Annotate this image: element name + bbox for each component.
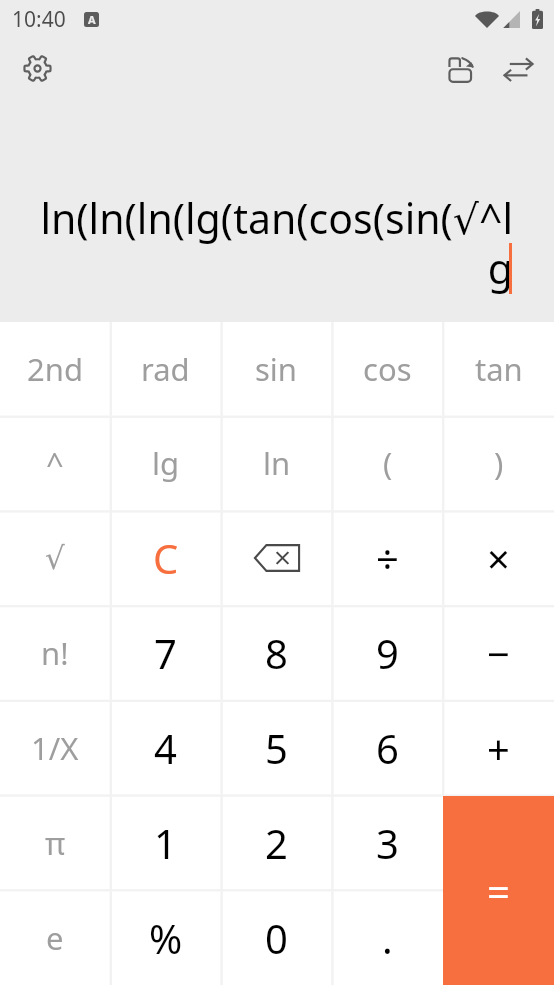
staticText: π [45,822,66,864]
button[interactable]: 1 [110,795,221,890]
button[interactable]: × [443,510,554,605]
staticText: 2 [265,816,288,870]
button[interactable]: √ [0,510,110,605]
button[interactable]: sin [221,322,332,416]
staticText: % [149,911,183,965]
staticText: 1/X [31,727,79,769]
staticText: ln [263,442,291,484]
staticText: 2nd [27,348,83,390]
button[interactable]: % [110,890,221,985]
button[interactable]: Delete [221,510,332,605]
button[interactable]: ( [332,416,443,510]
staticText: lg [152,442,180,484]
button[interactable]: 1/X [0,700,110,795]
staticText: rad [141,348,190,390]
staticText: 10:40 [12,5,66,34]
button[interactable]: rad [110,322,221,416]
button[interactable]: 5 [221,700,332,795]
button[interactable]: ln [221,416,332,510]
button[interactable]: − [443,605,554,700]
staticText: e [46,917,64,959]
button[interactable]: 9 [332,605,443,700]
staticText: ^ [46,442,64,484]
button[interactable]: Convert [492,43,544,95]
staticText: n! [41,632,69,674]
staticText: 6 [376,721,399,775]
staticText: 8 [265,626,288,680]
button[interactable]: tan [443,322,554,416]
button[interactable]: . [332,890,443,985]
button[interactable]: 0 [221,890,332,985]
button[interactable]: ) [443,416,554,510]
button[interactable]: 3 [332,795,443,890]
staticText: A [88,12,96,27]
staticText: − [487,626,510,680]
button[interactable]: 8 [221,605,332,700]
staticText: 4 [154,721,177,775]
staticText: 9 [376,626,399,680]
staticText: √ [45,540,65,576]
staticText: sin [255,348,298,390]
button[interactable]: lg [110,416,221,510]
staticText: ) [494,442,504,484]
button[interactable]: cos [332,322,443,416]
button[interactable]: + [443,700,554,795]
staticText: tan [475,348,523,390]
staticText: cos [363,348,412,390]
button[interactable]: e [0,890,110,985]
staticText: × [487,531,510,585]
staticText: ln(ln(ln(lg(tan(cos(sin(√^l g [14,190,513,296]
staticText: + [487,721,510,775]
staticText: 0 [265,911,288,965]
button[interactable]: π [0,795,110,890]
staticText: . [382,911,393,965]
staticText: 1 [154,816,177,870]
staticText: = [487,864,510,918]
staticText: C [153,531,179,585]
button[interactable]: = [443,796,554,985]
button[interactable]: 6 [332,700,443,795]
button[interactable]: n! [0,605,110,700]
button[interactable]: ÷ [332,510,443,605]
button[interactable]: 2nd [0,322,110,416]
button[interactable]: Settings [11,42,63,94]
staticText: ÷ [376,531,399,585]
button[interactable]: 4 [110,700,221,795]
button[interactable]: C [110,510,221,605]
staticText: 7 [154,626,177,680]
staticText: 3 [376,816,399,870]
button[interactable]: 7 [110,605,221,700]
staticText: 5 [265,721,288,775]
button[interactable]: Rotate screen [435,44,487,96]
staticText: ( [383,442,393,484]
button[interactable]: 2 [221,795,332,890]
button[interactable]: ^ [0,416,110,510]
